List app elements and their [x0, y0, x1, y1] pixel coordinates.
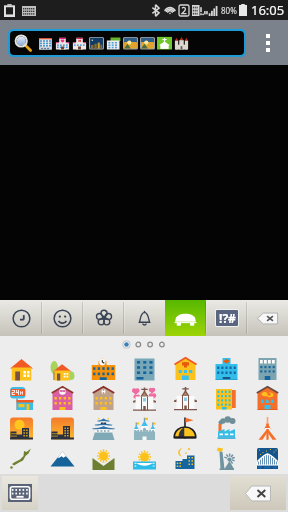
- button[interactable]: Emoji 3: [124, 353, 165, 383]
- button[interactable]: Emoji 15: [42, 413, 83, 443]
- button[interactable]: Emoji 4: [165, 353, 206, 383]
- button[interactable]: Emoji 16: [83, 413, 124, 443]
- button[interactable]: Nature: [83, 300, 124, 336]
- button[interactable]: Emoji 23: [83, 443, 124, 473]
- button[interactable]: Backspace: [230, 476, 286, 510]
- button[interactable]: Backspace: [247, 300, 288, 336]
- button[interactable]: Recent: [0, 300, 42, 336]
- button[interactable]: Emoji 14: [0, 413, 42, 443]
- button[interactable]: Emoji 8: [42, 383, 83, 413]
- button[interactable]: Emoji 6: [247, 353, 288, 383]
- button[interactable]: Emoji 19: [206, 413, 247, 443]
- button[interactable]: Emoji 26: [206, 443, 247, 473]
- button[interactable]: Emoji 25: [165, 443, 206, 473]
- button[interactable]: Smileys: [42, 300, 83, 336]
- button[interactable]: Emoji 7: [0, 383, 42, 413]
- button[interactable]: Emoji 0: [0, 353, 42, 383]
- button[interactable]: Emoji 21: [0, 443, 42, 473]
- button[interactable]: [10, 31, 244, 55]
- button[interactable]: Emoji 13: [247, 383, 288, 413]
- staticText: 16:05: [251, 1, 285, 19]
- button[interactable]: Emoji 12: [206, 383, 247, 413]
- staticText: 80%: [221, 5, 237, 16]
- button[interactable]: Emoji 18: [165, 413, 206, 443]
- button[interactable]: Emoji 24: [124, 443, 165, 473]
- button[interactable]: Emoji 1: [42, 353, 83, 383]
- button[interactable]: Emoji 10: [124, 383, 165, 413]
- button[interactable]: Emoji 9: [83, 383, 124, 413]
- button[interactable]: Keyboard: [2, 476, 38, 510]
- button[interactable]: More options: [247, 20, 288, 65]
- staticText: !?#: [219, 310, 236, 326]
- button[interactable]: Symbols: [206, 300, 247, 336]
- button[interactable]: Bell: [124, 300, 165, 336]
- button[interactable]: Emoji 17: [124, 413, 165, 443]
- button[interactable]: Places: [165, 300, 206, 336]
- button[interactable]: Emoji 11: [165, 383, 206, 413]
- button[interactable]: Emoji 2: [83, 353, 124, 383]
- button[interactable]: Emoji 20: [247, 413, 288, 443]
- button[interactable]: Emoji 5: [206, 353, 247, 383]
- button[interactable]: Emoji 22: [42, 443, 83, 473]
- button[interactable]: Emoji 27: [247, 443, 288, 473]
